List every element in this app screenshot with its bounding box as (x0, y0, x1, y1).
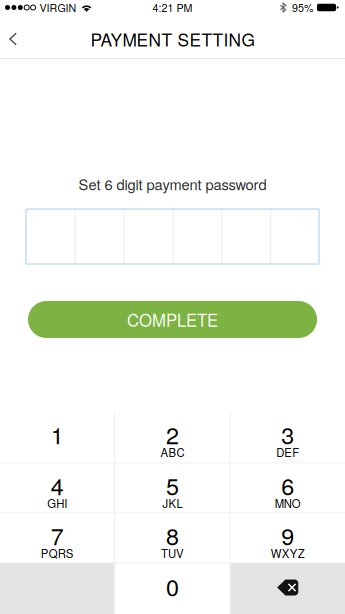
button[interactable]: 5 (115, 463, 230, 512)
staticText: 7 (51, 518, 64, 552)
staticText: 4 (51, 468, 64, 502)
button[interactable]: COMPLETE (28, 301, 317, 338)
staticText: 3 (281, 417, 294, 451)
staticText: DEF (276, 444, 299, 460)
staticText: PQRS (41, 545, 74, 561)
staticText: 1 (51, 417, 64, 451)
button[interactable]: 4 (0, 463, 114, 512)
staticText: MNO (275, 495, 301, 511)
staticText: TUV (161, 545, 184, 561)
staticText: JKL (162, 495, 182, 511)
staticText: PAYMENT SETTING (90, 27, 254, 51)
staticText: COMPLETE (127, 308, 218, 331)
staticText: VIRGIN (40, 0, 77, 15)
button[interactable]: 3 (231, 411, 345, 462)
button[interactable]: Delete (231, 563, 345, 614)
staticText: 6 (281, 468, 294, 502)
staticText: GHI (47, 495, 67, 511)
staticText: 8 (166, 518, 179, 552)
button[interactable]: 2 (115, 411, 230, 462)
button[interactable]: 0 (115, 563, 230, 614)
staticText: 9 (281, 518, 294, 552)
button[interactable]: 8 (115, 513, 230, 562)
button[interactable]: 6 (231, 463, 345, 512)
staticText: 95% (292, 0, 313, 15)
button[interactable]: 1 (0, 411, 114, 462)
staticText: Set 6 digit payment password (78, 173, 266, 194)
staticText: 0 (166, 569, 179, 603)
staticText: 4:21 PM (152, 0, 192, 15)
button[interactable]: 9 (231, 513, 345, 562)
button[interactable]: Back (0, 20, 44, 58)
button[interactable]: 7 (0, 513, 114, 562)
staticText: 2 (166, 417, 179, 451)
staticText: WXYZ (271, 545, 305, 561)
staticText: 5 (166, 468, 179, 502)
staticText: ABC (160, 444, 184, 460)
